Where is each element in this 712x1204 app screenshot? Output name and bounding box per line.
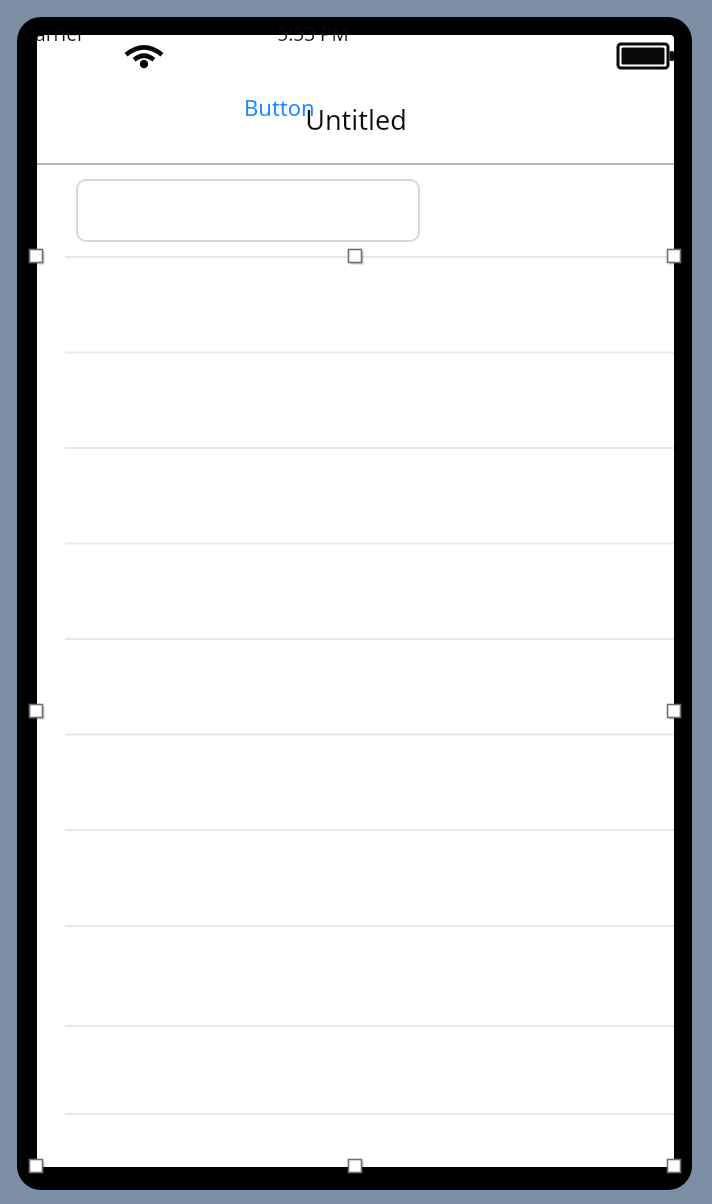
staticText: Button bbox=[244, 92, 315, 122]
staticText: Untitled bbox=[256, 101, 456, 141]
button[interactable]: Button bbox=[232, 92, 327, 122]
staticText: 5:53 PM bbox=[263, 21, 363, 51]
staticText: Carrier bbox=[23, 21, 85, 47]
